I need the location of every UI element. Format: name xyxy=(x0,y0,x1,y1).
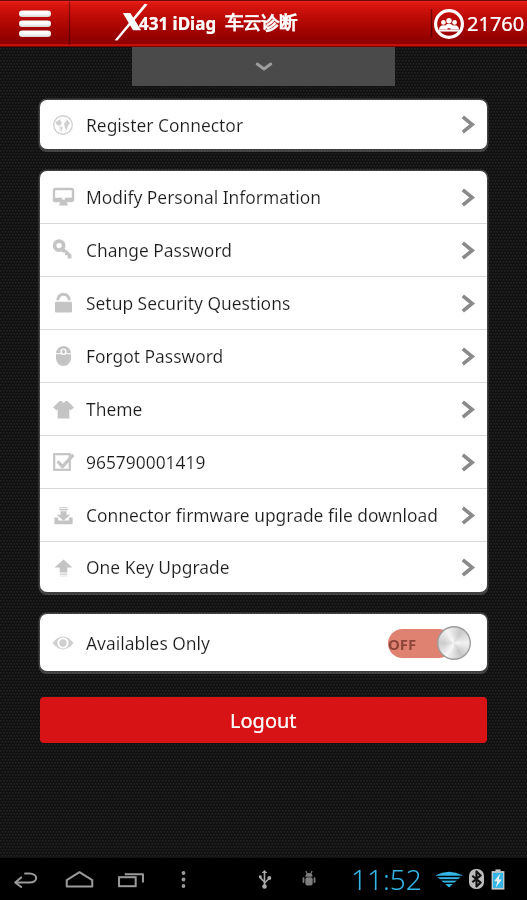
button[interactable]: Change Password xyxy=(40,224,487,276)
staticText: Modify Personal Information xyxy=(86,185,322,209)
staticText: Setup Security Questions xyxy=(86,291,291,315)
button[interactable]: Modify Personal Information xyxy=(40,171,487,223)
staticText: 965790001419 xyxy=(86,450,206,474)
staticText: Register Connector xyxy=(86,113,244,137)
staticText: Theme xyxy=(86,397,143,421)
button[interactable]: Register Connector xyxy=(40,100,487,149)
button[interactable]: Menu xyxy=(0,0,69,47)
button[interactable]: Recent apps xyxy=(111,858,151,900)
staticText: One Key Upgrade xyxy=(86,555,230,579)
button[interactable]: Online users 21760 xyxy=(433,0,525,47)
staticText: 21760 xyxy=(467,10,525,37)
button[interactable]: Availables Only xyxy=(40,614,487,671)
button[interactable]: Theme xyxy=(40,383,487,435)
button[interactable]: Connector firmware upgrade file download xyxy=(40,489,487,541)
button[interactable]: One Key Upgrade xyxy=(40,542,487,592)
staticText: 11:52 xyxy=(351,860,422,898)
staticText: Connector firmware upgrade file download xyxy=(86,503,438,527)
button[interactable]: Setup Security Questions xyxy=(40,277,487,329)
staticText: Logout xyxy=(230,707,297,734)
button[interactable]: Home xyxy=(59,858,99,900)
staticText: Forgot Password xyxy=(86,344,224,368)
button[interactable]: 965790001419 xyxy=(40,436,487,488)
staticText: 431 iDiag xyxy=(139,12,217,35)
button[interactable]: Back xyxy=(6,858,46,900)
button[interactable]: More options xyxy=(167,858,199,900)
button[interactable]: Logout xyxy=(40,697,487,743)
button[interactable]: Forgot Password xyxy=(40,330,487,382)
staticText: Change Password xyxy=(86,238,232,262)
staticText: Availables Only xyxy=(86,631,210,655)
staticText: 车云诊断 xyxy=(225,12,297,35)
button[interactable]: Expand account panel xyxy=(132,47,395,86)
staticText: OFF xyxy=(388,634,417,654)
